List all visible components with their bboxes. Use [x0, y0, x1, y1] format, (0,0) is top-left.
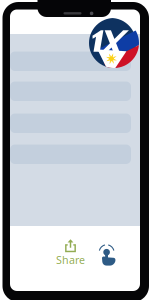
staticText: Share	[56, 253, 85, 267]
button[interactable]: Share	[52, 240, 88, 265]
